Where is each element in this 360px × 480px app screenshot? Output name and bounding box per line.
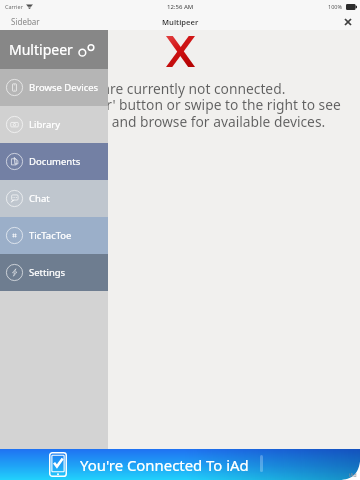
- staticText: Sidebar: [11, 16, 40, 27]
- staticText: Chat: [29, 192, 50, 205]
- staticText: You are currently not connected. Tap the…: [0, 79, 360, 132]
- staticText: Browse Devices: [29, 81, 99, 94]
- button[interactable]: Settings: [0, 254, 108, 291]
- button[interactable]: Chat: [0, 180, 108, 217]
- staticText: Multipeer: [162, 17, 199, 27]
- staticText: Library: [29, 118, 61, 131]
- staticText: You're Connected To iAd: [80, 455, 249, 475]
- button[interactable]: Documents: [0, 143, 108, 180]
- staticText: iAd: [349, 472, 357, 479]
- button[interactable]: Browse Devices: [0, 69, 108, 106]
- button[interactable]: Library: [0, 106, 108, 143]
- staticText: Carrier: [5, 3, 23, 10]
- staticText: TicTacToe: [29, 229, 72, 242]
- staticText: Documents: [29, 155, 81, 168]
- staticText: Multipeer: [9, 40, 73, 59]
- staticText: 12:56 AM: [167, 3, 194, 11]
- button[interactable]: Sidebar: [0, 13, 46, 30]
- button[interactable]: You're Connected To iAd: [0, 449, 360, 480]
- button[interactable]: TicTacToe: [0, 217, 108, 254]
- staticText: Settings: [29, 266, 66, 279]
- button[interactable]: Close: [340, 14, 355, 29]
- staticText: 100%: [328, 3, 343, 10]
